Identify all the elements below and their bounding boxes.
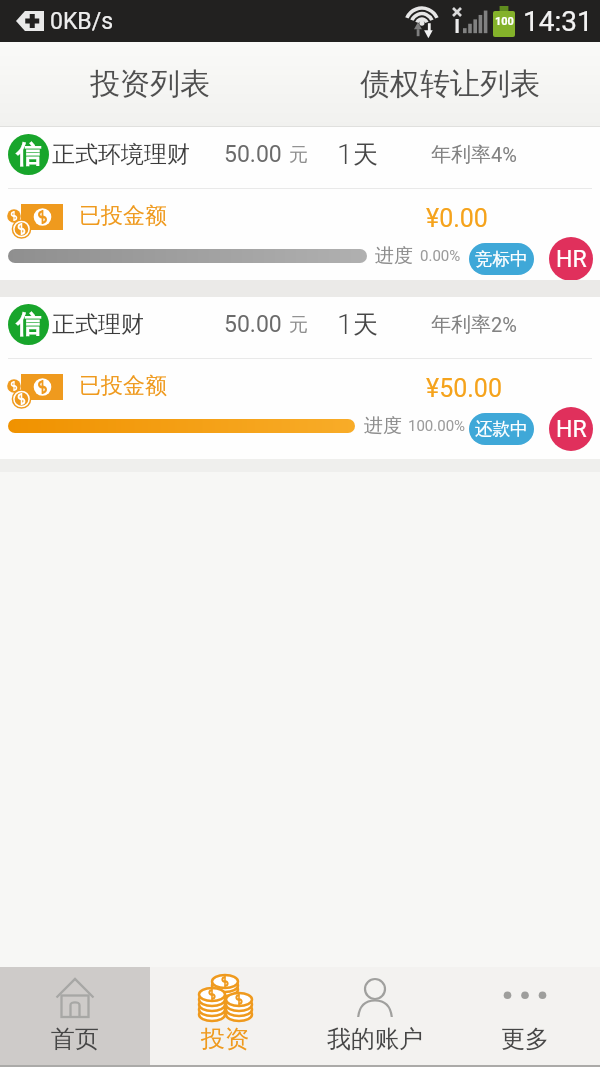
staticText: 0KB/s [50,8,114,35]
button[interactable]: 信 [0,297,600,352]
staticText: 更多 [501,1024,549,1054]
button[interactable]: 首页 [0,967,150,1067]
staticText: 天 [353,139,378,170]
button[interactable]: 竞标中 [469,243,534,275]
staticText: 1 [337,308,353,341]
staticText: 2% [491,313,517,336]
staticText: 14:31 [523,5,593,38]
staticText: 已投金额 [79,202,167,230]
button[interactable]: 债权转让列表 [300,42,600,126]
button[interactable]: 我的账户 [300,967,450,1067]
staticText: 投资 [201,1024,249,1054]
staticText: 债权转让列表 [360,65,540,103]
staticText: 元 [289,313,308,337]
button[interactable]: HR [549,237,593,281]
staticText: HR [556,246,587,273]
button[interactable]: 投资列表 [0,42,300,126]
staticText: 已投金额 [79,372,167,400]
staticText: 50.00 [224,311,282,338]
staticText: 正式环境理财 [52,140,190,169]
button[interactable]: 已投金额 [0,189,600,243]
staticText: 年利率 [431,312,491,337]
staticText: 进度 [375,244,413,268]
staticText: 还款中 [475,418,528,440]
button[interactable]: 还款中 [469,413,534,445]
staticText: 天 [353,309,378,340]
staticText: 投资列表 [90,65,210,103]
staticText: 元 [289,143,308,167]
button[interactable]: 已投金额 [0,359,600,413]
staticText: 首页 [51,1024,99,1054]
button[interactable]: 信 [0,127,600,182]
staticText: 年利率 [431,142,491,167]
staticText: ¥50.00 [426,374,502,403]
staticText: ¥0.00 [426,204,488,233]
staticText: 100 [495,15,514,28]
staticText: HR [556,416,587,443]
staticText: 信 [16,309,41,340]
staticText: 我的账户 [327,1024,423,1054]
staticText: 竞标中 [475,248,528,270]
staticText: 1 [337,138,353,171]
button[interactable]: 更多 [450,967,600,1067]
staticText: 正式理财 [52,310,144,339]
button[interactable]: HR [549,407,593,451]
staticText: 进度 [364,414,402,438]
button[interactable]: 投资 [150,967,300,1067]
staticText: 信 [16,139,41,170]
staticText: 100.00% [408,417,466,435]
staticText: 50.00 [224,141,282,168]
staticText: 0.00% [420,247,461,265]
staticText: 4% [491,143,517,166]
